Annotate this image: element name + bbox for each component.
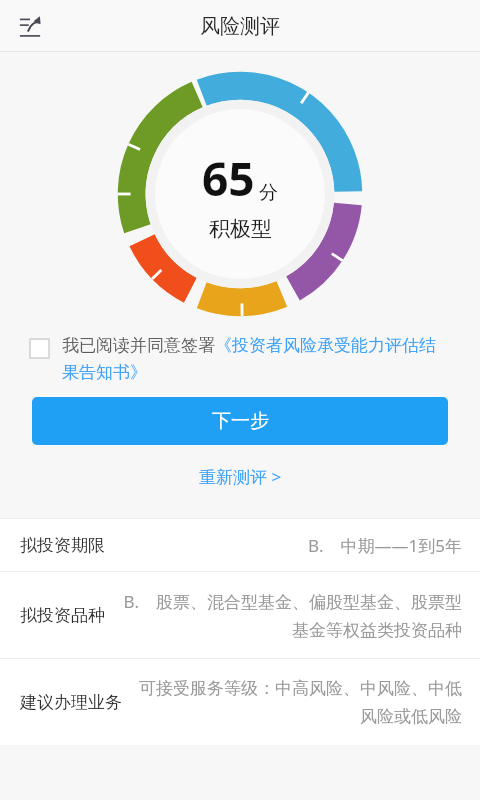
button[interactable]: 我已阅读并同意签署《投资者风险承受能力评估结果告知书》 bbox=[30, 335, 452, 383]
button[interactable]: 下一步 bbox=[32, 397, 448, 445]
staticText: 拟投资期限 bbox=[20, 535, 105, 556]
staticText: 下一步 bbox=[212, 409, 269, 433]
staticText: 积极型 bbox=[209, 216, 272, 242]
staticText: 重新测评 > bbox=[199, 465, 282, 488]
staticText: 风险测评 bbox=[200, 14, 280, 39]
button[interactable]: 拟投资期限 bbox=[0, 519, 480, 571]
button[interactable]: 建议办理业务 bbox=[0, 659, 480, 745]
button[interactable]: 重新测评 > bbox=[187, 461, 294, 492]
staticText: 我已阅读并同意签署《投资者风险承受能力评估结果告知书》 bbox=[62, 335, 452, 383]
staticText: 建议办理业务 bbox=[20, 692, 122, 713]
button[interactable]: Back bbox=[8, 4, 52, 48]
staticText: 拟投资品种 bbox=[20, 605, 105, 626]
staticText: B. 中期——1到5年 bbox=[117, 534, 462, 557]
staticText: 65 bbox=[202, 147, 255, 210]
staticText: B. 股票、混合型基金、偏股型基金、股票型基金等权益类投资品种 bbox=[117, 590, 462, 641]
button[interactable]: 拟投资品种 bbox=[0, 572, 480, 658]
staticText: 分 bbox=[259, 181, 278, 205]
staticText: 可接受服务等级：中高风险、中风险、中低风险或低风险 bbox=[134, 678, 462, 727]
